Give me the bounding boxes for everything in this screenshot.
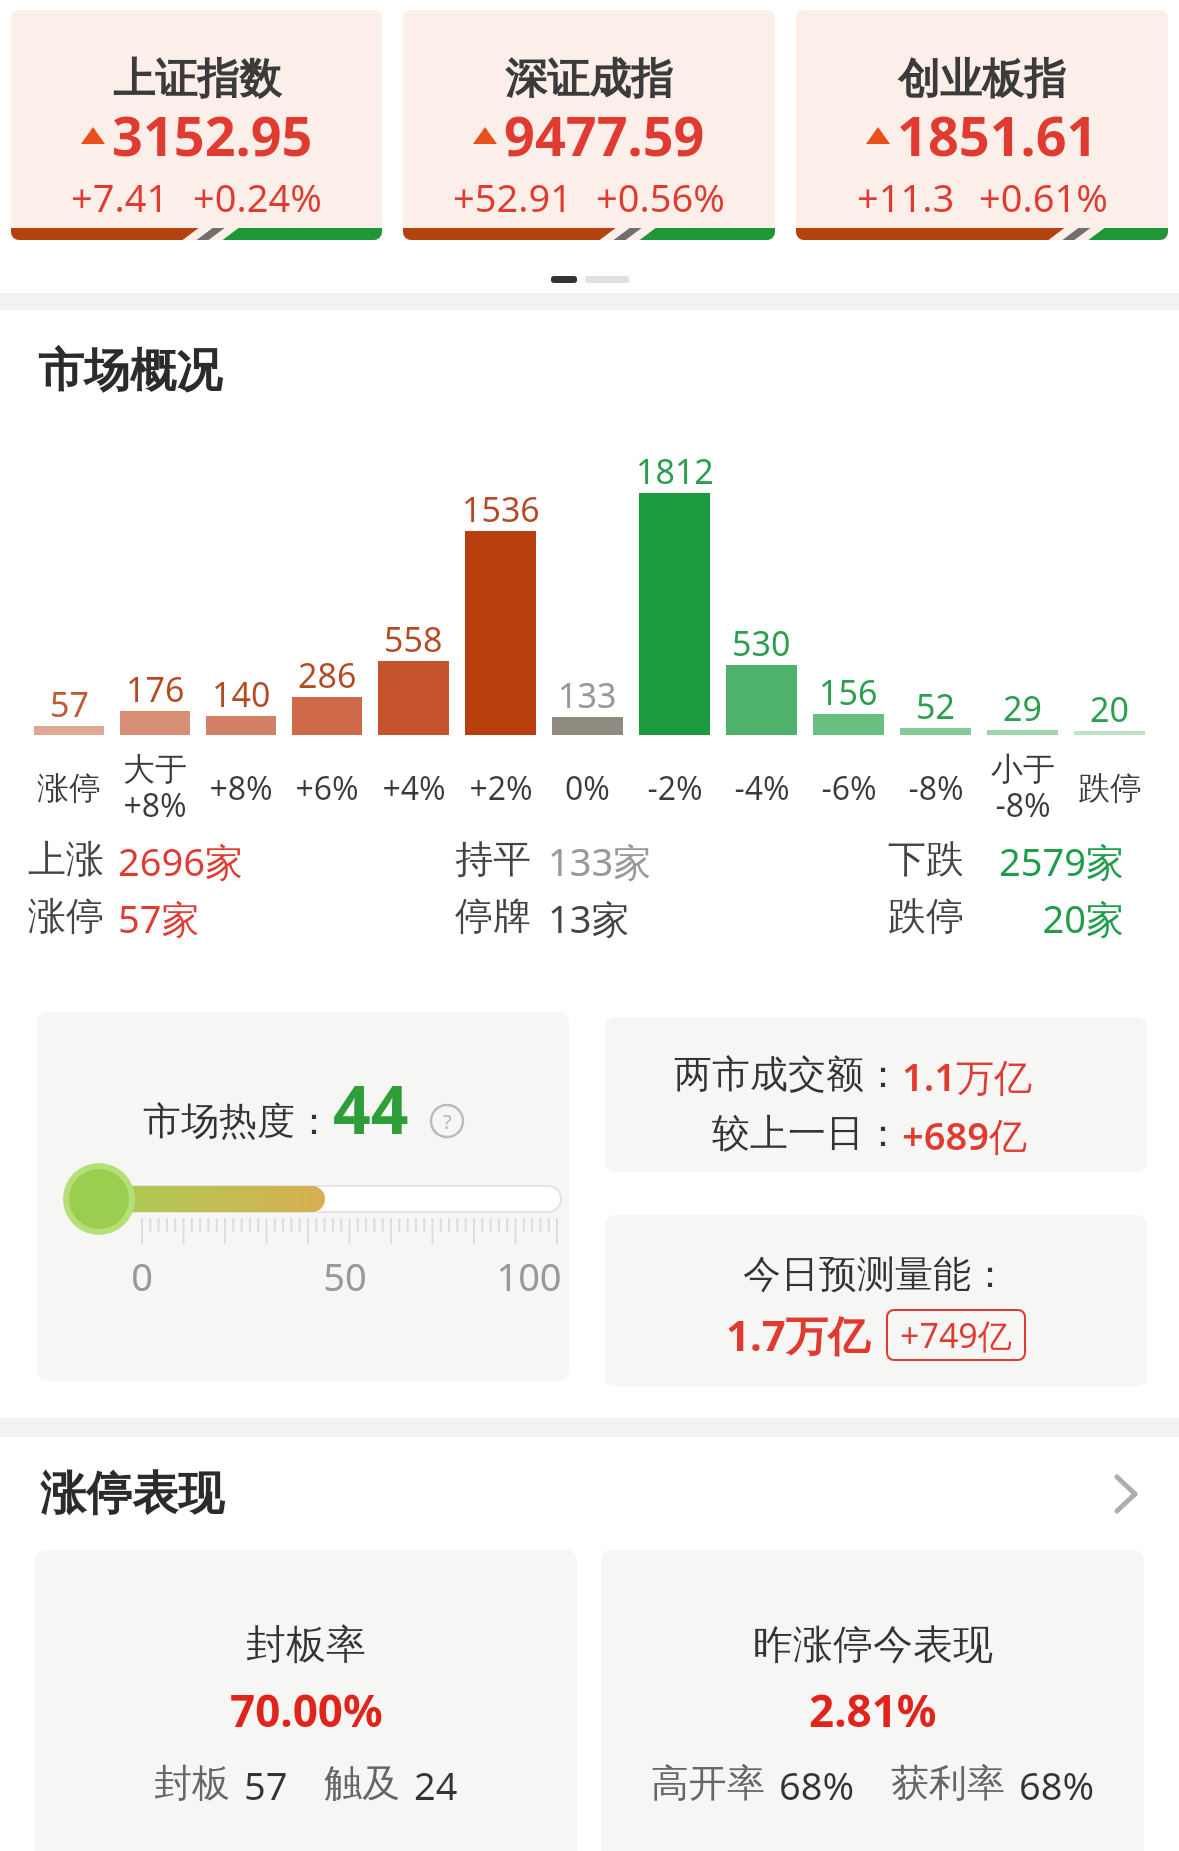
staticText: +4% — [382, 766, 446, 810]
staticText: +0.24% — [193, 171, 322, 223]
staticText: 100 — [489, 1250, 569, 1302]
staticText: +0.61% — [979, 171, 1108, 223]
staticText: 530 — [732, 620, 791, 666]
button[interactable]: 创业板指 — [796, 10, 1168, 240]
staticText: +52.91 — [453, 171, 572, 223]
staticText: 较上一日： — [605, 1109, 902, 1157]
staticText: -8% — [908, 766, 964, 810]
staticText: 1.1万亿 — [902, 1050, 1032, 1102]
button[interactable]: 上证指数 — [11, 10, 382, 240]
staticText: 上证指数 — [113, 53, 281, 106]
staticText: 小于 -8% — [991, 749, 1055, 827]
staticText: 176 — [126, 666, 185, 712]
staticText: 57 — [50, 681, 89, 727]
button[interactable]: 深证成指 — [403, 10, 775, 240]
staticText: 57 — [244, 1759, 288, 1811]
staticText: 高开率 — [651, 1759, 765, 1807]
staticText: 封板 — [154, 1759, 230, 1807]
staticText: 封板率 — [246, 1619, 366, 1669]
staticText: 涨停 — [37, 768, 101, 808]
staticText: 50 — [305, 1250, 385, 1302]
staticText: 68% — [779, 1759, 855, 1811]
staticText: -4% — [734, 766, 790, 810]
staticText: 市场热度： — [143, 1097, 333, 1145]
staticText: 跌停 — [888, 892, 964, 940]
staticText: ? — [443, 1108, 452, 1135]
staticText: +0.56% — [596, 171, 725, 223]
button[interactable]: 昨涨停今表现 — [601, 1550, 1144, 1851]
button[interactable]: 封板率 — [35, 1550, 577, 1851]
staticText: +7.41 — [71, 171, 169, 223]
staticText: 2.81% — [809, 1680, 937, 1740]
staticText: 市场概况 — [38, 342, 222, 400]
staticText: +749亿 — [900, 1312, 1012, 1358]
staticText: 上涨 — [28, 835, 104, 883]
button[interactable]: 两市成交额： — [605, 1017, 1147, 1172]
staticText: +689亿 — [902, 1109, 1027, 1161]
staticText: 52 — [916, 683, 955, 729]
staticText: 133家 — [548, 835, 652, 887]
staticText: 持平 — [455, 835, 531, 883]
staticText: 创业板指 — [898, 53, 1066, 106]
button[interactable]: 市场热度： — [37, 1012, 569, 1381]
staticText: 2579家 — [930, 835, 1124, 887]
staticText: 156 — [819, 669, 878, 715]
staticText: -2% — [647, 766, 703, 810]
staticText: 286 — [298, 652, 357, 698]
staticText: 涨停 — [28, 892, 104, 940]
staticText: +6% — [295, 766, 359, 810]
staticText: 1812 — [636, 448, 714, 494]
staticText: 深证成指 — [505, 53, 673, 106]
button[interactable]: 今日预测量能： — [605, 1215, 1147, 1387]
staticText: 停牌 — [455, 892, 531, 940]
staticText: 0 — [102, 1250, 182, 1302]
staticText: 1.7万亿 — [726, 1306, 870, 1363]
staticText: 大于 +8% — [123, 749, 187, 827]
staticText: 今日预测量能： — [743, 1250, 1009, 1298]
staticText: 68% — [1019, 1759, 1095, 1811]
staticText: 29 — [1003, 685, 1042, 731]
staticText: 9477.59 — [504, 98, 705, 172]
staticText: +8% — [209, 766, 273, 810]
staticText: 两市成交额： — [605, 1050, 902, 1098]
staticText: 558 — [384, 616, 443, 662]
staticText: 13家 — [548, 892, 630, 944]
staticText: 24 — [414, 1759, 458, 1811]
staticText: +2% — [469, 766, 533, 810]
staticText: 140 — [212, 671, 271, 717]
staticText: 20 — [1090, 686, 1129, 732]
staticText: 70.00% — [230, 1680, 383, 1740]
staticText: 44 — [333, 1063, 409, 1153]
staticText: 1536 — [462, 486, 540, 532]
staticText: 133 — [558, 672, 617, 718]
staticText: 触及 — [324, 1759, 400, 1807]
staticText: 2696家 — [118, 835, 243, 887]
staticText: 1851.61 — [897, 98, 1098, 172]
staticText: 0% — [565, 766, 610, 810]
staticText: 跌停 — [1078, 768, 1142, 808]
staticText: 3152.95 — [112, 98, 313, 172]
staticText: 涨停表现 — [40, 1465, 224, 1523]
staticText: 57家 — [118, 892, 200, 944]
staticText: +11.3 — [857, 171, 955, 223]
staticText: -6% — [821, 766, 877, 810]
staticText: 20家 — [930, 892, 1124, 944]
staticText: 昨涨停今表现 — [753, 1619, 993, 1669]
staticText: 获利率 — [891, 1759, 1005, 1807]
staticText: 下跌 — [888, 835, 964, 883]
button[interactable]: 涨停表现 — [40, 1465, 1137, 1523]
